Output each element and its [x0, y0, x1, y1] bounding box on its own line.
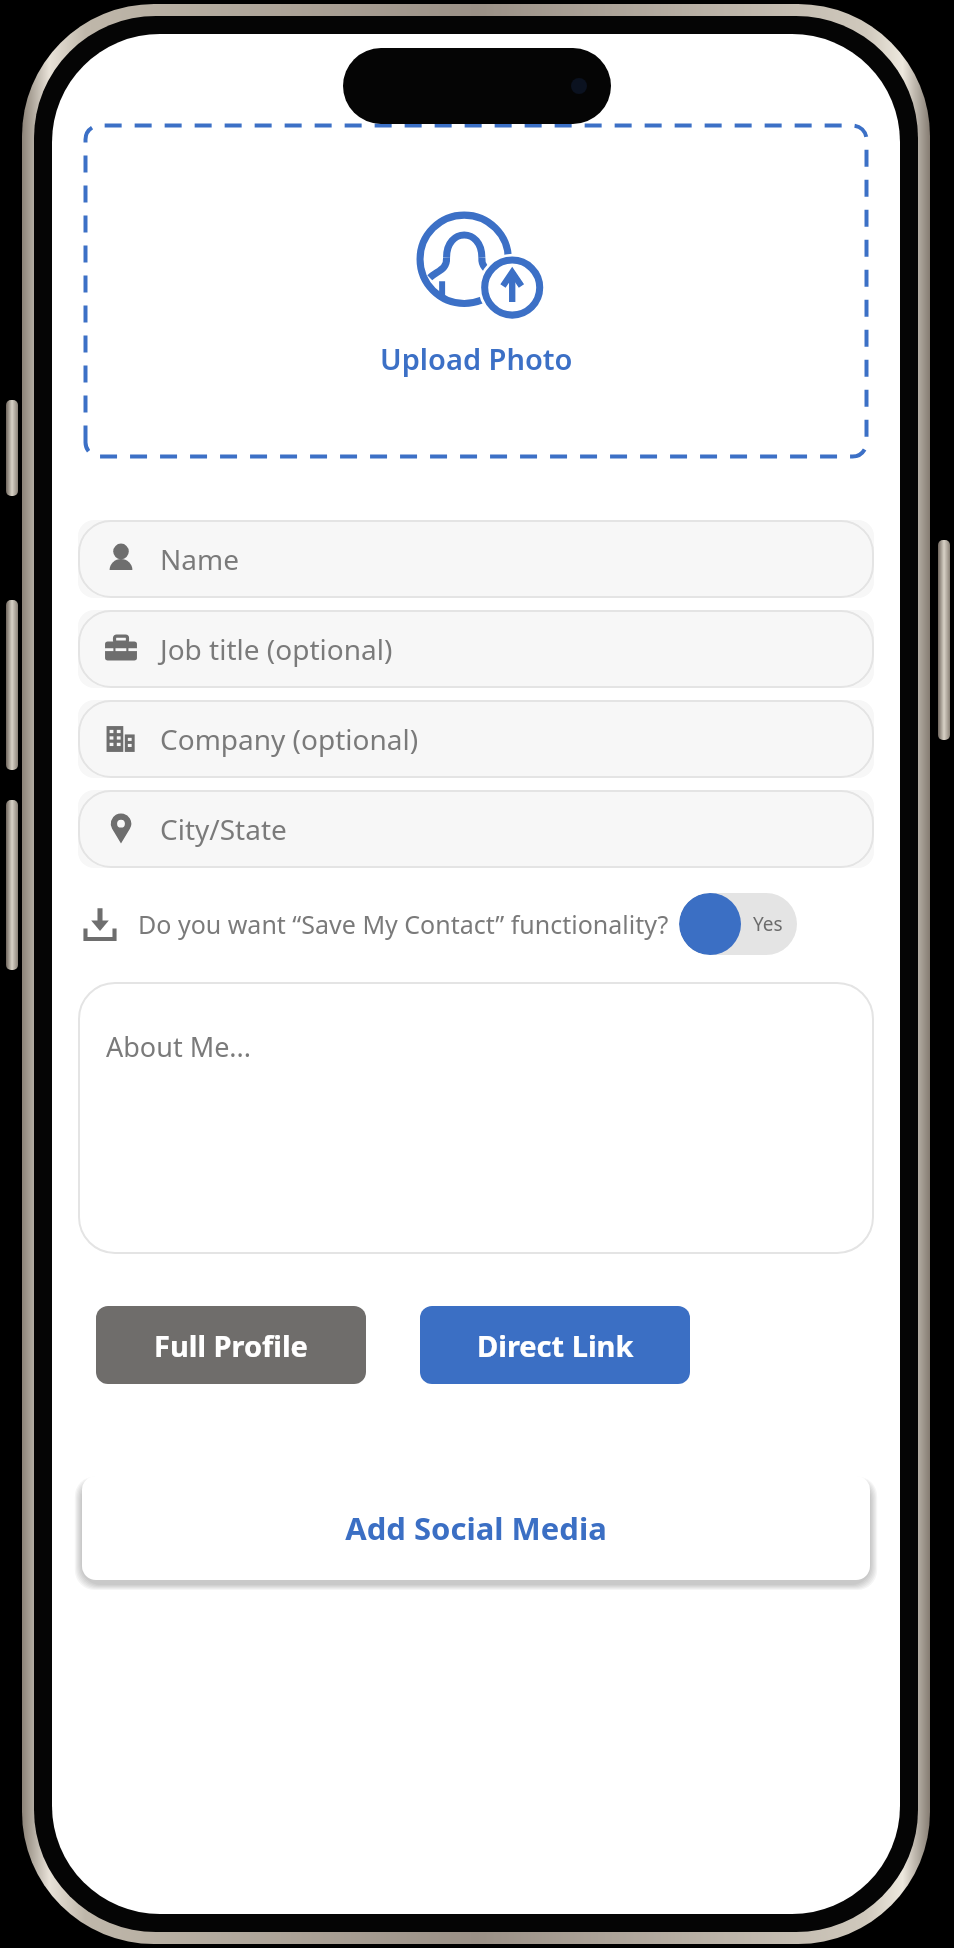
- button[interactable]: Company (optional): [78, 700, 874, 778]
- staticText: About Me...: [106, 1028, 252, 1065]
- staticText: Yes: [753, 911, 783, 937]
- staticText: Upload Photo: [380, 339, 573, 378]
- button[interactable]: Add Social Media: [82, 1476, 870, 1580]
- button[interactable]: Save My Contact toggle, Yes: [679, 893, 797, 955]
- button[interactable]: Direct Link: [420, 1306, 690, 1384]
- staticText: Job title (optional): [160, 630, 393, 668]
- staticText: Company (optional): [160, 720, 419, 758]
- staticText: Do you want “Save My Contact” functional…: [138, 907, 669, 941]
- button[interactable]: City/State: [78, 790, 874, 868]
- staticText: City/State: [160, 810, 287, 848]
- button[interactable]: Full Profile: [96, 1306, 366, 1384]
- staticText: Name: [160, 540, 239, 578]
- button[interactable]: About Me...: [78, 982, 874, 1254]
- staticText: Direct Link: [477, 1326, 634, 1365]
- button[interactable]: Upload Photo: [84, 124, 868, 458]
- button[interactable]: Name: [78, 520, 874, 598]
- button[interactable]: Do you want “Save My Contact” functional…: [78, 888, 874, 960]
- button[interactable]: Job title (optional): [78, 610, 874, 688]
- staticText: Full Profile: [154, 1326, 308, 1365]
- staticText: Add Social Media: [345, 1507, 607, 1549]
